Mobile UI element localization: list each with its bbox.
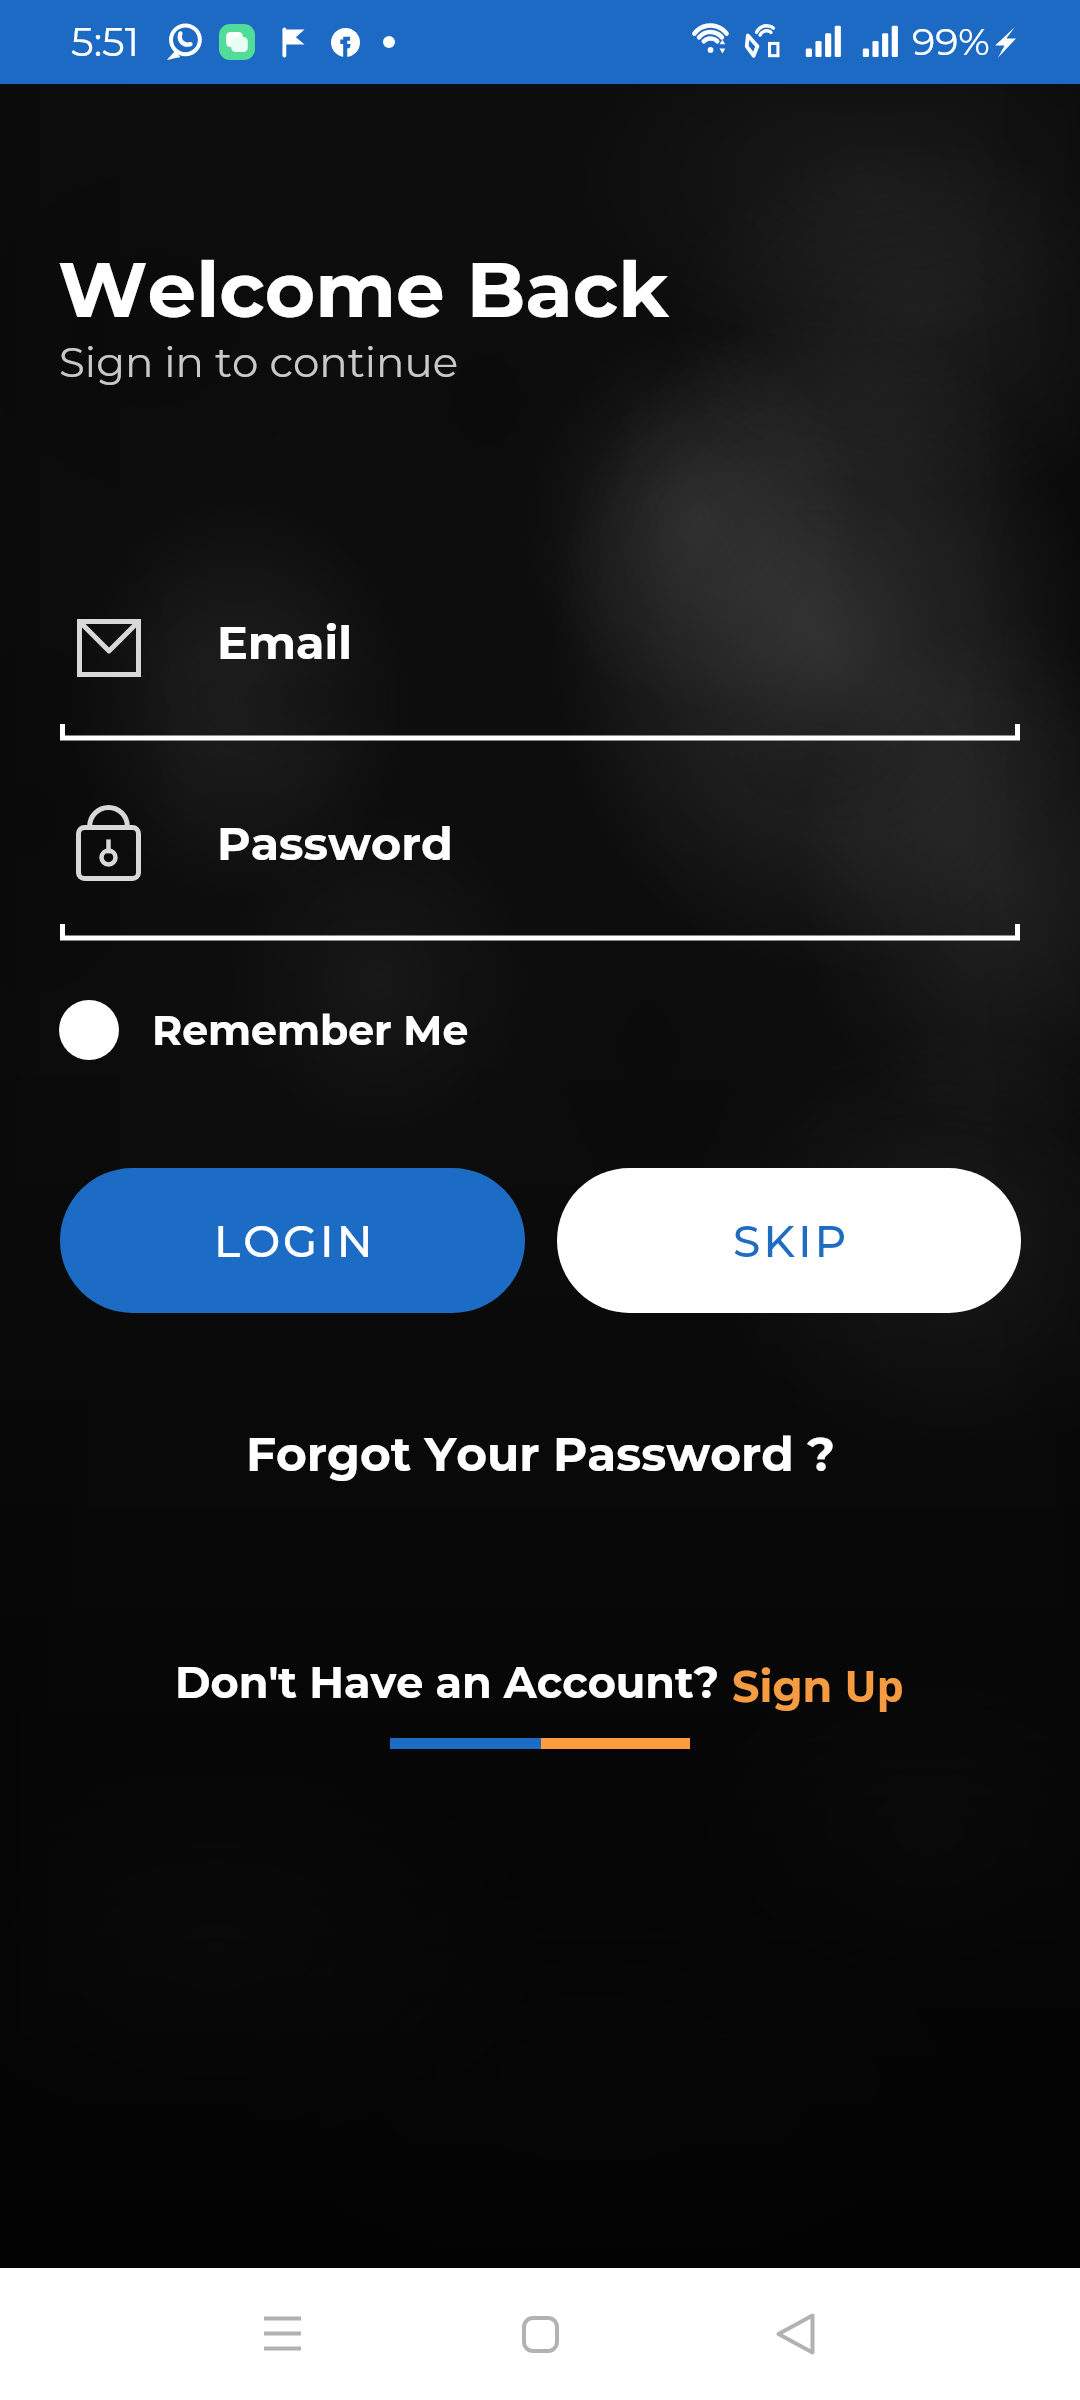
button[interactable]: Password (0, 801, 1080, 966)
staticText: LOGIN (214, 1214, 376, 1268)
staticText: SKIP (733, 1214, 850, 1268)
button[interactable]: Sign Up (732, 1656, 905, 1715)
button[interactable]: Forgot Your Password ? (246, 1426, 835, 1483)
button[interactable]: Home (475, 2268, 605, 2400)
staticText: Password (217, 815, 453, 871)
button[interactable]: Email (0, 601, 1080, 766)
staticText: Don't Have an Account? (175, 1656, 732, 1708)
button[interactable]: Recent apps (217, 2268, 347, 2400)
button[interactable]: Remember Me (59, 1000, 469, 1060)
staticText: Welcome Back (58, 242, 669, 336)
staticText: 5:51 (71, 17, 140, 66)
staticText: Remember Me (152, 1005, 469, 1055)
button[interactable]: SKIP (557, 1168, 1021, 1313)
staticText: Sign in to continue (59, 336, 459, 387)
staticText: 99% (912, 18, 990, 64)
staticText: Email (217, 614, 353, 670)
button[interactable]: LOGIN (60, 1168, 525, 1313)
button[interactable]: Back (730, 2268, 860, 2400)
